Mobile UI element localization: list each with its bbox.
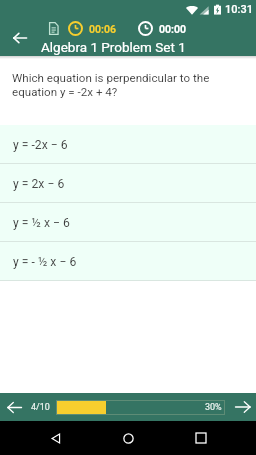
staticText: 00:00	[159, 23, 187, 35]
button[interactable]: Back	[6, 24, 34, 52]
staticText: Which equation is perpendicular to the e…	[12, 71, 222, 99]
staticText: 30%	[205, 402, 222, 413]
button[interactable]: Recent apps	[184, 421, 218, 455]
staticText: 4/10	[31, 402, 50, 413]
button[interactable]: Back	[39, 421, 73, 455]
button[interactable]: y = - ½ x − 6	[0, 242, 256, 281]
staticText: y = -2x − 6	[13, 138, 68, 152]
button[interactable]: Next question	[233, 393, 253, 421]
button[interactable]: y = -2x − 6	[0, 125, 256, 164]
staticText: y = 2x − 6	[13, 177, 65, 191]
button[interactable]: y = 2x − 6	[0, 164, 256, 203]
staticText: 00:06	[89, 23, 117, 35]
button[interactable]: Home	[111, 421, 145, 455]
staticText: Algebra 1 Problem Set 1	[41, 39, 186, 55]
staticText: y = ½ x − 6	[13, 216, 70, 230]
staticText: y = - ½ x − 6	[13, 255, 77, 269]
button[interactable]: y = ½ x − 6	[0, 203, 256, 242]
staticText: 10:31	[225, 3, 253, 16]
button[interactable]: Previous question	[4, 393, 24, 421]
